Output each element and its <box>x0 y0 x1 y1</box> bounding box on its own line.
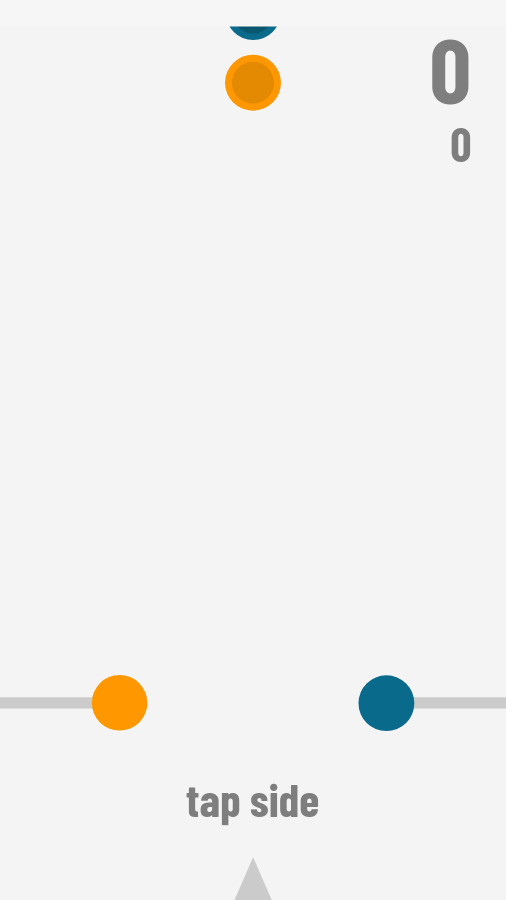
button[interactable]: Tap left side <box>0 0 253 900</box>
button[interactable]: Swipe up for menu <box>223 857 283 900</box>
button[interactable]: Tap right side <box>253 0 506 900</box>
button[interactable]: Right paddle <box>358 675 414 731</box>
button[interactable]: Left paddle <box>92 675 148 731</box>
